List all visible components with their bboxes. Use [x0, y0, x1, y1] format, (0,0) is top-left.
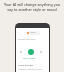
- staticText: Record your voice: [18, 38, 36, 41]
- button[interactable]: Voice Changer: [26, 31, 40, 35]
- staticText: Choose a style and let the assistant spe…: [18, 68, 43, 72]
- staticText: Your AI will change anything you say to …: [1, 2, 63, 12]
- staticText: Voice Changer: [30, 31, 40, 35]
- staticText: Voice presets: [18, 63, 34, 66]
- staticText: Tap to speak: [23, 57, 35, 60]
- button[interactable]: Record: [28, 49, 34, 55]
